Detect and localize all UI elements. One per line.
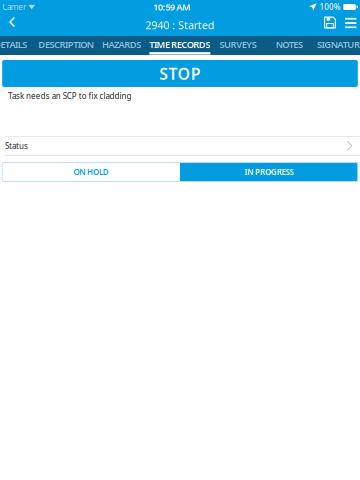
button[interactable]: DESCRIPTION (36, 36, 96, 54)
staticText: HAZARDS (102, 38, 141, 50)
staticText: SURVEYS (219, 38, 257, 50)
staticText: STOP (159, 63, 201, 84)
staticText: 100% (320, 2, 341, 12)
button[interactable]: TIME RECORDS (147, 36, 213, 54)
button[interactable]: STOP (2, 60, 358, 87)
staticText: DETAILS (0, 38, 27, 50)
staticText: DESCRIPTION (38, 38, 94, 50)
staticText: IN PROGRESS (244, 167, 293, 177)
staticText: 2940 : Started (145, 18, 215, 32)
button[interactable]: Menu (341, 14, 360, 36)
button[interactable]: Status (0, 137, 360, 155)
staticText: Carrier (2, 2, 26, 12)
button[interactable]: IN PROGRESS (180, 162, 358, 181)
button[interactable]: SIGNATURE (315, 36, 360, 54)
staticText: Status (5, 141, 28, 151)
button[interactable]: ON HOLD (2, 162, 180, 181)
button[interactable]: HAZARDS (96, 36, 147, 54)
staticText: NOTES (276, 38, 303, 50)
button[interactable]: Back (4, 14, 21, 36)
button[interactable]: SURVEYS (213, 36, 264, 54)
staticText: 10:59 AM (153, 1, 191, 13)
button[interactable]: NOTES (264, 36, 315, 54)
staticText: Task needs an SCP to fix cladding (8, 91, 131, 101)
staticText: ON HOLD (73, 167, 109, 177)
button[interactable]: Save (320, 14, 340, 36)
button[interactable]: DETAILS (0, 36, 36, 54)
staticText: SIGNATURE (317, 38, 360, 50)
staticText: TIME RECORDS (149, 38, 210, 50)
